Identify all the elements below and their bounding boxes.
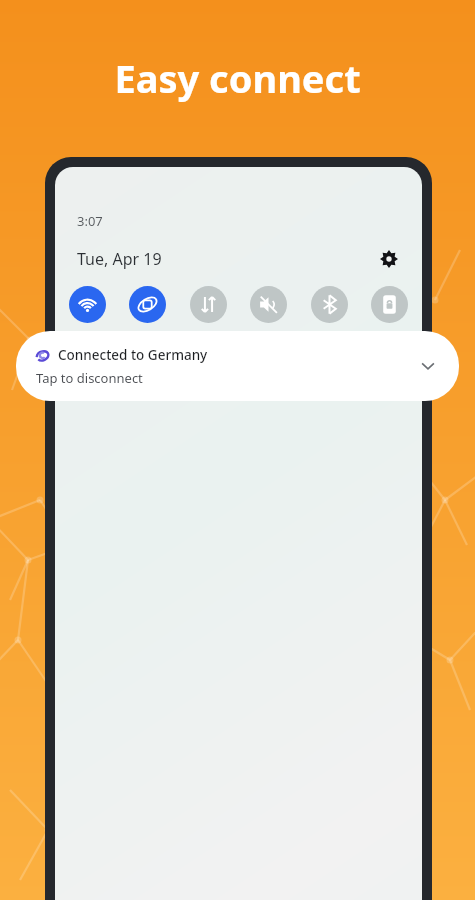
button[interactable]: Connected to Germany bbox=[16, 331, 459, 401]
button[interactable]: VPN bbox=[129, 286, 166, 323]
staticText: Tue, Apr 19 bbox=[77, 248, 162, 270]
button[interactable]: Auto rotate lock bbox=[371, 286, 408, 323]
staticText: 3:07 bbox=[77, 212, 103, 230]
button[interactable]: Mute bbox=[250, 286, 287, 323]
staticText: Connected to Germany bbox=[58, 346, 208, 364]
staticText: Tap to disconnect bbox=[36, 369, 143, 387]
staticText: Easy connect bbox=[114, 52, 361, 104]
button[interactable]: Wi-Fi bbox=[69, 286, 106, 323]
button[interactable]: Expand bbox=[415, 353, 441, 379]
button[interactable]: Settings bbox=[376, 246, 402, 272]
button[interactable]: Mobile data bbox=[190, 286, 227, 323]
button[interactable]: Bluetooth bbox=[311, 286, 348, 323]
